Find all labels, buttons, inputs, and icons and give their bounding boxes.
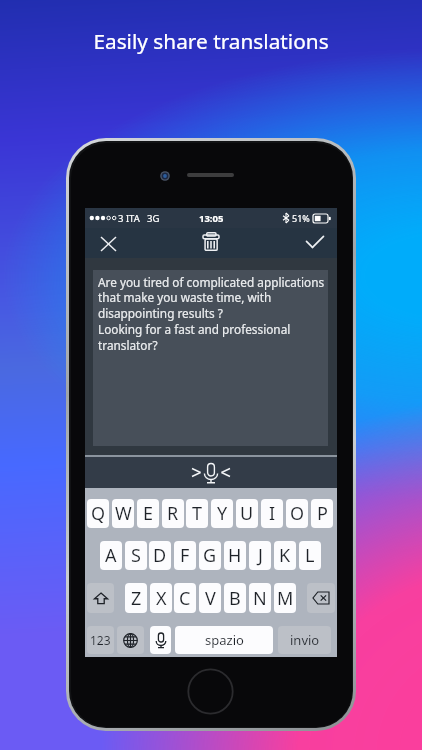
button[interactable]: Backspace [307, 583, 335, 613]
staticText: invio [290, 631, 320, 649]
button[interactable]: R [162, 499, 184, 528]
staticText: Q [91, 501, 106, 526]
staticText: I [269, 501, 276, 526]
staticText: W [115, 501, 132, 526]
button[interactable]: E [137, 499, 159, 528]
staticText: 123 [90, 632, 111, 648]
button[interactable]: Y [211, 499, 233, 528]
button[interactable]: V [199, 583, 221, 613]
staticText: Easily share translations [0, 27, 422, 55]
button[interactable]: K [274, 541, 296, 570]
button[interactable]: Voice input [186, 461, 236, 485]
staticText: Are you tired of complicated application… [98, 274, 325, 354]
button[interactable]: I [261, 499, 283, 528]
staticText: D [153, 543, 167, 568]
staticText: F [180, 543, 190, 568]
button[interactable]: W [112, 499, 134, 528]
staticText: S [131, 543, 141, 568]
button[interactable]: N [249, 583, 271, 613]
staticText: O [290, 501, 305, 526]
button[interactable]: Delete [199, 228, 223, 255]
staticText: H [228, 543, 242, 568]
staticText: 3G [147, 212, 160, 225]
staticText: M [277, 586, 294, 611]
staticText: P [317, 501, 328, 526]
button[interactable]: Shift [87, 583, 114, 613]
staticText: K [279, 543, 291, 568]
button[interactable]: G [199, 541, 221, 570]
staticText: A [105, 543, 117, 568]
staticText: J [258, 543, 263, 568]
button[interactable]: C [174, 583, 196, 613]
button[interactable]: S [125, 541, 147, 570]
button[interactable]: Change keyboard [117, 626, 144, 654]
button[interactable]: X [150, 583, 172, 613]
staticText: spazio [205, 631, 244, 649]
staticText: C [179, 586, 191, 611]
button[interactable]: spazio [175, 626, 273, 654]
button[interactable]: A [100, 541, 122, 570]
button[interactable]: H [224, 541, 246, 570]
button[interactable]: Confirm [297, 229, 331, 256]
button[interactable]: Q [87, 499, 109, 528]
button[interactable]: F [174, 541, 196, 570]
button[interactable]: T [186, 499, 208, 528]
staticText: 13:05 [199, 212, 224, 225]
button[interactable]: Numbers [87, 626, 114, 654]
staticText: 3 ITA [118, 212, 140, 225]
staticText: R [167, 501, 179, 526]
button[interactable]: D [149, 541, 171, 570]
staticText: V [205, 586, 216, 611]
staticText: T [192, 501, 203, 526]
staticText: G [203, 543, 217, 568]
staticText: 51% [292, 212, 310, 224]
button[interactable]: B [224, 583, 246, 613]
button[interactable]: U [236, 499, 258, 528]
staticText: X [156, 586, 167, 611]
staticText: E [143, 501, 154, 526]
button[interactable]: L [299, 541, 321, 570]
button[interactable]: O [286, 499, 308, 528]
staticText: B [229, 586, 241, 611]
staticText: N [253, 586, 267, 611]
button[interactable]: P [311, 499, 333, 528]
button[interactable]: Close [95, 231, 121, 257]
button[interactable]: Z [125, 583, 147, 613]
button[interactable]: Dictate [150, 626, 171, 654]
staticText: U [240, 501, 254, 526]
button[interactable]: invio [278, 626, 331, 654]
staticText: Y [217, 501, 228, 526]
staticText: L [305, 543, 315, 568]
button[interactable]: J [249, 541, 271, 570]
button[interactable]: M [274, 583, 296, 613]
staticText: Z [131, 586, 142, 611]
